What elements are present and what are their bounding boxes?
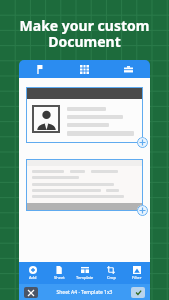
button[interactable]: Briefcase bbox=[106, 60, 150, 78]
button[interactable]: Confirm bbox=[131, 287, 145, 298]
staticText: Template bbox=[76, 275, 94, 280]
staticText: Sheet A4 · Template 1x3 bbox=[38, 289, 131, 296]
button[interactable] bbox=[26, 87, 143, 143]
button[interactable] bbox=[26, 159, 143, 211]
staticText: Add bbox=[29, 275, 37, 280]
staticText: Sheet bbox=[54, 275, 65, 280]
button[interactable]: Filter bbox=[124, 262, 150, 284]
button[interactable]: Cancel bbox=[24, 287, 38, 298]
button[interactable]: Add element bbox=[137, 137, 148, 148]
staticText: Make your custom Document bbox=[0, 16, 169, 51]
button[interactable]: Template bbox=[72, 262, 98, 284]
staticText: Crop bbox=[107, 275, 116, 280]
button[interactable]: Format bbox=[19, 60, 62, 78]
button[interactable]: Crop bbox=[98, 262, 124, 284]
button[interactable]: Add element bbox=[137, 205, 148, 216]
button[interactable]: Table bbox=[62, 60, 106, 78]
staticText: Filter bbox=[132, 275, 142, 280]
button[interactable]: Add bbox=[19, 262, 46, 284]
button[interactable]: Sheet bbox=[46, 262, 72, 284]
